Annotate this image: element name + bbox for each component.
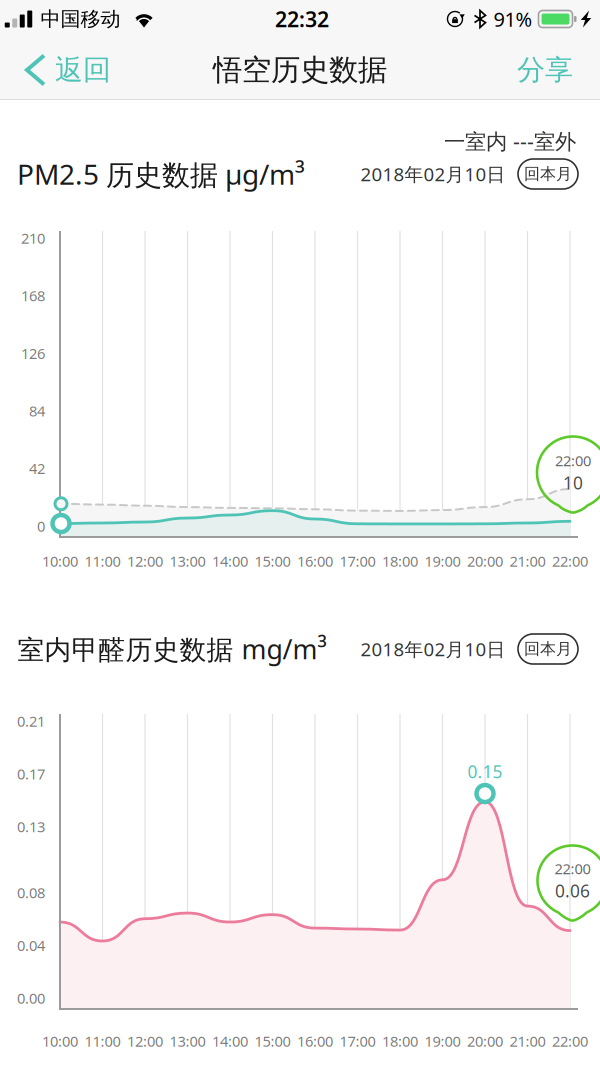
staticText: 20:00	[467, 551, 503, 571]
button[interactable]: 回本月	[518, 634, 578, 664]
staticText: 室内甲醛历史数据 mg/m³	[17, 631, 326, 667]
staticText: 12:00	[127, 1031, 163, 1051]
staticText: 19:00	[424, 1031, 460, 1051]
staticText: 16:00	[297, 1031, 333, 1051]
staticText: 10:00	[42, 1031, 78, 1051]
staticText: 16:00	[297, 551, 333, 571]
staticText: 14:00	[212, 551, 248, 571]
staticText: 中国移动	[40, 7, 120, 31]
staticText: 19:00	[424, 551, 460, 571]
staticText: 15:00	[254, 551, 290, 571]
staticText: 0.15	[467, 760, 502, 783]
staticText: 21:00	[509, 1031, 545, 1051]
staticText: 22:00	[552, 551, 588, 571]
staticText: 11:00	[84, 551, 120, 571]
staticText: 0.00	[17, 988, 45, 1008]
staticText: 0.06	[555, 879, 590, 902]
staticText: 回本月	[524, 639, 572, 659]
staticText: 0	[37, 516, 45, 536]
staticText: 回本月	[524, 164, 572, 184]
staticText: 一室内 ---室外	[444, 127, 576, 155]
staticText: 12:00	[127, 551, 163, 571]
staticText: 20:00	[467, 1031, 503, 1051]
staticText: 22:00	[555, 451, 591, 470]
button[interactable]: 返回	[3, 40, 129, 100]
staticText: 18:00	[382, 1031, 418, 1051]
staticText: 10:00	[42, 551, 78, 571]
staticText: 0.17	[17, 764, 45, 783]
staticText: 0.04	[17, 935, 45, 955]
staticText: 14:00	[212, 1031, 248, 1051]
staticText: 91%	[493, 6, 532, 32]
staticText: 15:00	[254, 1031, 290, 1051]
staticText: 168	[21, 286, 45, 305]
staticText: 11:00	[84, 1031, 120, 1051]
staticText: 17:00	[339, 551, 375, 571]
staticText: 18:00	[382, 551, 418, 571]
staticText: 0.21	[17, 711, 45, 731]
staticText: 22:32	[275, 5, 329, 33]
staticText: 210	[21, 228, 45, 248]
staticText: 84	[29, 401, 45, 421]
staticText: 10	[563, 471, 583, 494]
staticText: PM2.5 历史数据 µg/m³	[17, 155, 305, 193]
staticText: 2018年02月10日	[360, 637, 505, 661]
staticText: 21:00	[509, 551, 545, 571]
staticText: 0.08	[17, 883, 45, 902]
button[interactable]: 回本月	[518, 159, 578, 189]
staticText: 126	[21, 343, 45, 363]
staticText: 悟空历史数据	[213, 52, 387, 88]
staticText: 17:00	[339, 1031, 375, 1051]
staticText: 42	[29, 459, 45, 478]
staticText: 2018年02月10日	[360, 162, 505, 186]
staticText: 0.13	[17, 817, 45, 836]
staticText: 返回	[55, 53, 111, 87]
staticText: 22:00	[554, 859, 590, 878]
staticText: 22:00	[552, 1031, 588, 1051]
button[interactable]: 分享	[495, 40, 595, 100]
staticText: 13:00	[169, 1031, 205, 1051]
staticText: 13:00	[169, 551, 205, 571]
staticText: 分享	[517, 53, 573, 87]
